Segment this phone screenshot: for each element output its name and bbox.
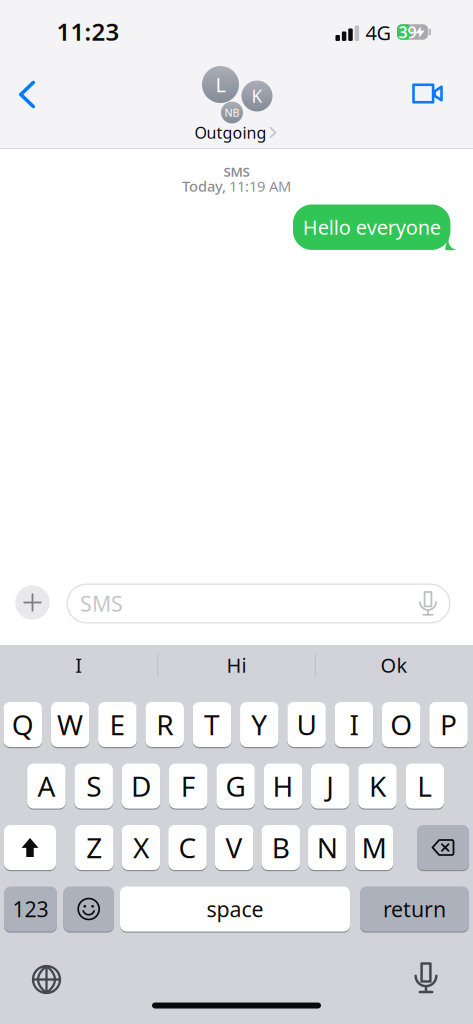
button[interactable]: H	[264, 763, 302, 809]
button[interactable]: T	[193, 701, 231, 748]
button[interactable]: Q	[4, 701, 42, 748]
staticText: SMS	[80, 589, 123, 618]
staticText: return	[383, 895, 446, 923]
staticText: B	[272, 829, 290, 866]
staticText: Hi	[226, 652, 246, 678]
button[interactable]: return	[360, 886, 469, 932]
button[interactable]: S	[74, 763, 113, 809]
button[interactable]: Delete	[417, 824, 469, 871]
button[interactable]: I	[9, 645, 149, 685]
staticText: 123	[12, 895, 48, 923]
staticText: G	[226, 767, 246, 805]
button[interactable]: X	[122, 824, 160, 871]
button[interactable]: V	[215, 824, 253, 871]
staticText: E	[109, 706, 125, 743]
button[interactable]: FaceTime	[407, 79, 447, 108]
button[interactable]: 123	[4, 886, 57, 932]
staticText: R	[156, 706, 173, 743]
staticText: J	[326, 767, 334, 805]
staticText: S	[86, 767, 101, 805]
button[interactable]: O	[382, 701, 420, 748]
button[interactable]: Apps	[15, 585, 50, 620]
button[interactable]: SMS text field	[66, 583, 450, 623]
staticText: U	[297, 706, 317, 743]
button[interactable]: A	[27, 763, 66, 809]
staticText: L	[215, 71, 225, 98]
staticText: 4G	[365, 19, 391, 46]
staticText: F	[181, 767, 196, 805]
button[interactable]: W	[51, 701, 89, 748]
staticText: Y	[251, 706, 267, 743]
button[interactable]: L	[405, 763, 444, 809]
staticText: L	[417, 767, 432, 805]
staticText: K	[251, 84, 262, 107]
button[interactable]: C	[168, 824, 207, 871]
button[interactable]: M	[355, 824, 393, 871]
button[interactable]: F	[169, 763, 207, 809]
staticText: C	[178, 829, 196, 866]
button[interactable]: J	[311, 763, 349, 809]
staticText: T	[204, 706, 220, 743]
button[interactable]: P	[429, 701, 468, 748]
button[interactable]: Next keyboard	[27, 960, 66, 999]
button[interactable]: Back	[15, 76, 39, 112]
staticText: K	[369, 767, 386, 805]
staticText: P	[440, 706, 457, 743]
button[interactable]: Shift	[4, 824, 56, 871]
staticText: X	[133, 829, 149, 866]
staticText: N	[317, 829, 338, 866]
staticText: H	[272, 767, 293, 805]
staticText: O	[390, 706, 412, 743]
button[interactable]: Conversation details	[190, 60, 282, 140]
button[interactable]: E	[98, 701, 137, 748]
staticText: M	[361, 829, 386, 866]
staticText: Outgoing	[194, 122, 266, 143]
staticText: V	[226, 829, 243, 866]
button[interactable]: Ok	[324, 645, 464, 685]
staticText: 39	[398, 21, 416, 43]
staticText: SMS	[223, 163, 249, 180]
staticText: 11:19 AM	[229, 176, 291, 196]
button[interactable]: I	[335, 701, 373, 748]
button[interactable]: B	[261, 824, 300, 871]
button[interactable]: Emoji	[63, 886, 114, 932]
staticText: I	[349, 706, 358, 743]
button[interactable]: R	[145, 701, 184, 748]
button[interactable]: space	[120, 886, 350, 932]
button[interactable]: K	[358, 763, 397, 809]
button[interactable]: N	[308, 824, 347, 871]
staticText: I	[75, 652, 82, 678]
staticText: W	[57, 706, 83, 743]
button[interactable]: Z	[75, 824, 113, 871]
staticText: space	[206, 895, 263, 923]
button[interactable]: G	[216, 763, 255, 809]
staticText: Ok	[380, 652, 407, 678]
staticText: A	[37, 767, 55, 805]
button[interactable]: Dictation	[409, 957, 443, 999]
staticText: NB	[224, 105, 239, 120]
button[interactable]: Y	[240, 701, 279, 748]
staticText: Today,	[182, 176, 226, 196]
button[interactable]: U	[287, 701, 326, 748]
staticText: 11:23	[56, 16, 119, 47]
staticText: Hello everyone	[303, 214, 441, 240]
button[interactable]: D	[122, 763, 160, 809]
staticText: Q	[12, 706, 34, 743]
staticText: Z	[86, 829, 102, 866]
staticText: D	[131, 767, 151, 805]
button[interactable]: Hi	[166, 645, 306, 685]
